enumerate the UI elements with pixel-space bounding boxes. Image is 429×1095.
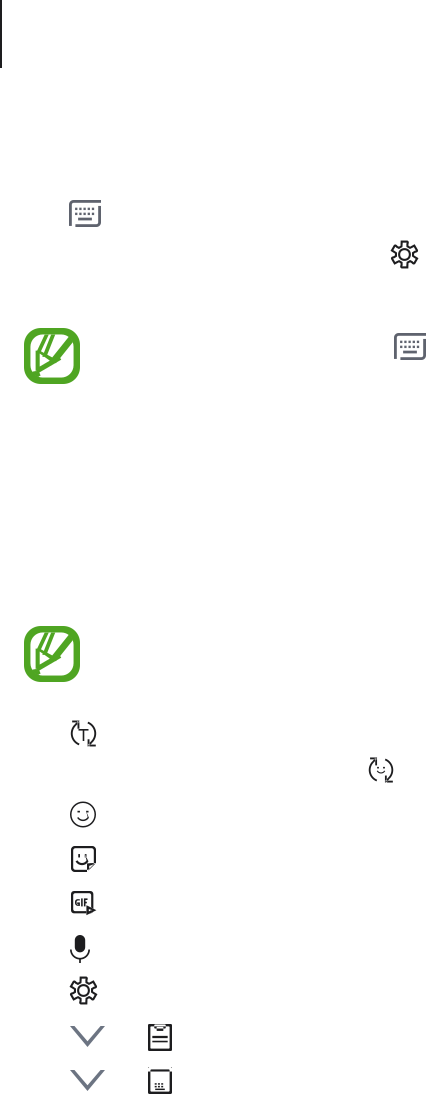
button[interactable]: Keyboard bbox=[69, 200, 101, 227]
button[interactable]: Settings bbox=[390, 240, 419, 269]
